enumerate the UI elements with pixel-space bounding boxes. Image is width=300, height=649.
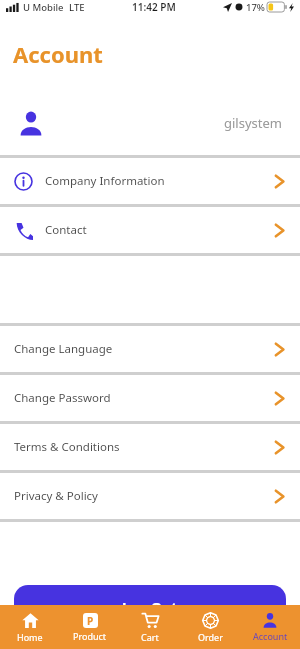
staticText: P [87, 614, 94, 628]
button[interactable]: Company Information [0, 158, 300, 204]
staticText: Change Password [14, 390, 111, 406]
button[interactable]: Log Out [14, 585, 286, 629]
staticText: Product [73, 630, 107, 642]
button[interactable]: Product [60, 605, 120, 649]
button[interactable]: Home [0, 605, 60, 649]
staticText: Privacy & Policy [14, 488, 98, 504]
button[interactable]: Account [240, 605, 300, 649]
button[interactable]: Profile avatar [0, 90, 300, 155]
staticText: Change Language [14, 341, 113, 357]
button[interactable]: Change Language [0, 326, 300, 372]
button[interactable]: Order [180, 605, 240, 649]
staticText: Log Out [122, 598, 178, 617]
staticText: Account [253, 630, 288, 642]
button[interactable]: Privacy & Policy [0, 473, 300, 519]
staticText: Company Information [45, 173, 165, 189]
staticText: 17% [246, 1, 265, 14]
staticText: Cart [141, 631, 159, 643]
staticText: gilsystem [224, 114, 282, 132]
staticText: 11:42 PM [132, 0, 176, 14]
button[interactable]: Cart [120, 605, 180, 649]
staticText: Home [17, 631, 43, 643]
staticText: Contact [45, 222, 87, 238]
button[interactable]: Terms & Conditions [0, 424, 300, 470]
button[interactable]: Contact [0, 207, 300, 253]
staticText: Account [13, 39, 103, 69]
staticText: LTE [69, 1, 85, 14]
other: Profile avatar [18, 110, 44, 136]
staticText: Order [198, 631, 223, 643]
staticText: U Mobile [23, 1, 64, 14]
button[interactable]: Change Password [0, 375, 300, 421]
staticText: Terms & Conditions [14, 439, 120, 455]
